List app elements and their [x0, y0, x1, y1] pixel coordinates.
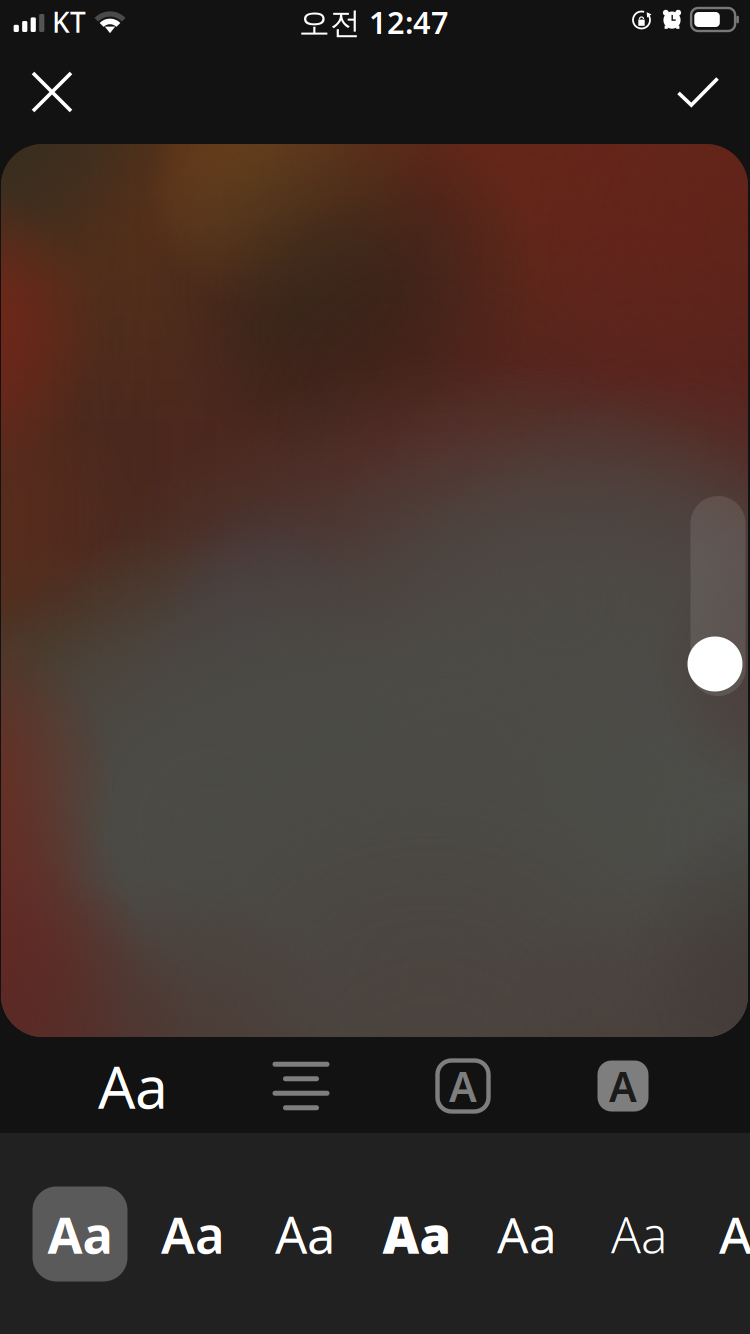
button[interactable]: Text highlight: [577, 1040, 669, 1132]
staticText: A: [609, 1059, 637, 1113]
button[interactable]: Text alignment: [251, 1040, 351, 1132]
button[interactable]: Aa: [32, 1186, 127, 1281]
button[interactable]: Close: [9, 49, 95, 135]
button[interactable]: Text background: [417, 1040, 509, 1132]
staticText: A: [449, 1059, 477, 1113]
button[interactable]: Aa: [702, 1186, 750, 1281]
staticText: KT: [52, 3, 86, 41]
staticText: Aa: [382, 1200, 451, 1268]
button[interactable]: Done: [655, 49, 741, 135]
button[interactable]: Aa: [369, 1186, 464, 1281]
button[interactable]: Aa: [78, 1040, 188, 1132]
staticText: Aa: [47, 1200, 112, 1268]
button[interactable]: Aa: [145, 1186, 240, 1281]
staticText: Aa: [497, 1201, 557, 1267]
staticText: Aa: [275, 1200, 335, 1268]
button[interactable]: Aa: [257, 1186, 352, 1281]
staticText: Aa: [719, 1200, 750, 1268]
staticText: Aa: [611, 1201, 667, 1267]
staticText: Aa: [98, 1047, 168, 1125]
button[interactable]: Aa: [479, 1186, 574, 1281]
staticText: Aa: [161, 1200, 225, 1268]
staticText: 오전 12:47: [299, 2, 449, 42]
button[interactable]: Aa: [591, 1186, 686, 1281]
